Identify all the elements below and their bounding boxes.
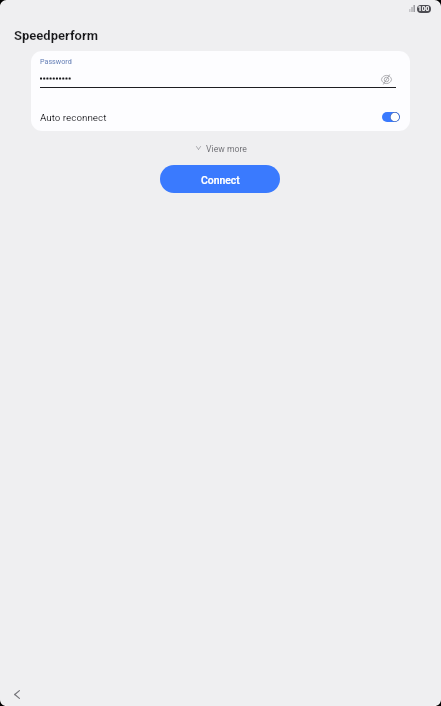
staticText: 100: [418, 5, 430, 13]
button[interactable]: Back: [7, 684, 27, 704]
button[interactable]: Toggle password visibility: [374, 67, 398, 91]
button[interactable]: View more: [193, 142, 250, 156]
staticText: View more: [206, 144, 247, 154]
staticText: Speedperform: [14, 28, 98, 43]
button[interactable]: Connect: [160, 165, 280, 193]
staticText: Auto reconnect: [40, 112, 382, 123]
staticText: Password: [40, 57, 72, 65]
button[interactable]: Auto reconnect: [31, 102, 410, 131]
staticText: Connect: [201, 174, 240, 186]
